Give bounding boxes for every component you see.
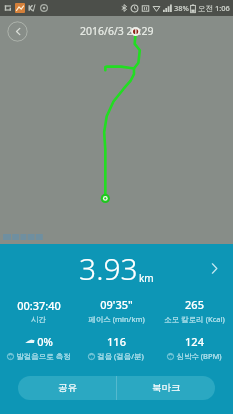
staticText: 2016/6/3 21:29 bbox=[80, 24, 154, 38]
staticText: 오전 1:06 bbox=[198, 3, 230, 13]
staticText: 124 bbox=[185, 334, 204, 349]
staticText: 발걸음으로 측정 bbox=[16, 351, 71, 361]
button[interactable]: 09'35" bbox=[77, 292, 155, 329]
button[interactable]: 북마크 bbox=[117, 376, 215, 400]
button[interactable]: Back bbox=[7, 21, 28, 42]
staticText: 페이스 (min/km) bbox=[88, 314, 145, 324]
staticText: 09'35" bbox=[100, 297, 133, 312]
button[interactable]: 3.93 bbox=[0, 244, 233, 292]
button[interactable]: 116 bbox=[77, 329, 155, 366]
staticText: 공유 bbox=[58, 382, 77, 394]
staticText: 심박수 (BPM) bbox=[176, 351, 222, 361]
staticText: 265 bbox=[185, 297, 204, 312]
button[interactable]: 00:37:40 bbox=[0, 292, 77, 329]
staticText: 북마크 bbox=[152, 382, 181, 394]
staticText: 38% bbox=[174, 3, 189, 13]
staticText: 소모 칼로리 (Kcal) bbox=[164, 314, 225, 324]
staticText: 116 bbox=[107, 334, 126, 349]
button[interactable]: 공유 bbox=[18, 376, 116, 400]
staticText: 3.93 bbox=[79, 248, 138, 289]
staticText: 시간 bbox=[31, 315, 46, 324]
button[interactable]: 265 bbox=[155, 292, 233, 329]
staticText: km bbox=[139, 271, 154, 285]
button[interactable]: 0% bbox=[0, 329, 77, 366]
staticText: 걸음 (걸음/분) bbox=[97, 351, 144, 361]
staticText: 0% bbox=[37, 334, 53, 349]
button[interactable]: 124 bbox=[155, 329, 233, 366]
staticText: 00:37:40 bbox=[17, 298, 61, 313]
